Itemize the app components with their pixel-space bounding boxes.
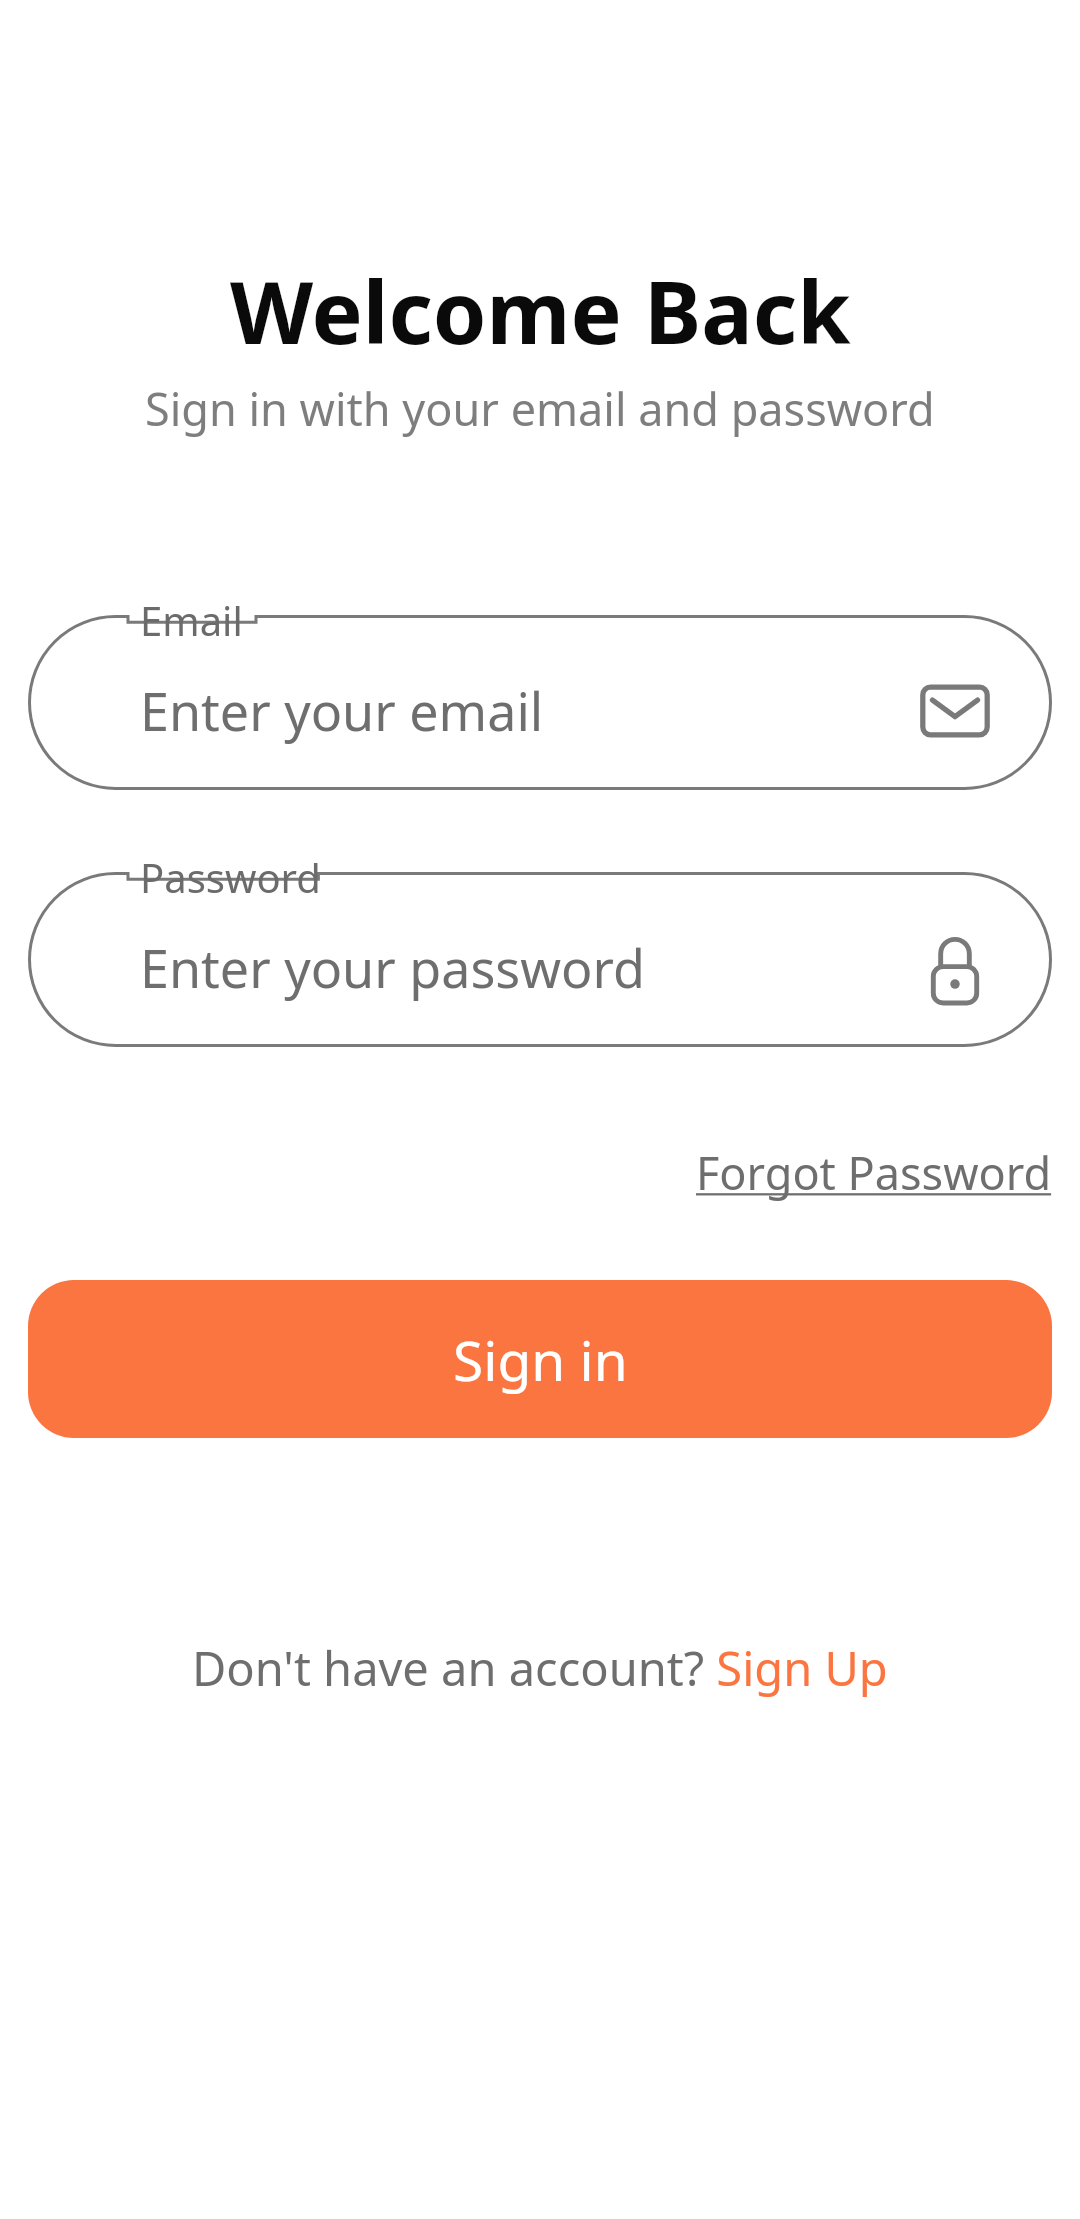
button[interactable]: Password — [28, 872, 1052, 1047]
other: Email address — [920, 676, 990, 746]
staticText: Password — [140, 850, 321, 904]
button[interactable]: Forgot Password — [696, 1142, 1052, 1203]
staticText: Don't have an account? Sign Up — [192, 1636, 888, 1700]
button[interactable]: Sign in — [28, 1280, 1052, 1438]
button[interactable]: Email — [28, 615, 1052, 790]
staticText: Enter your password — [140, 932, 645, 1003]
staticText: Email — [140, 593, 243, 647]
other: Password — [920, 933, 990, 1003]
staticText: Sign in — [453, 1322, 628, 1397]
button[interactable]: Don't have an account? Sign Up — [192, 1636, 888, 1700]
staticText: Sign in with your email and password — [145, 378, 935, 439]
staticText: Welcome Back — [230, 252, 851, 369]
staticText: Forgot Password — [696, 1142, 1052, 1203]
staticText: Enter your email — [140, 675, 544, 746]
